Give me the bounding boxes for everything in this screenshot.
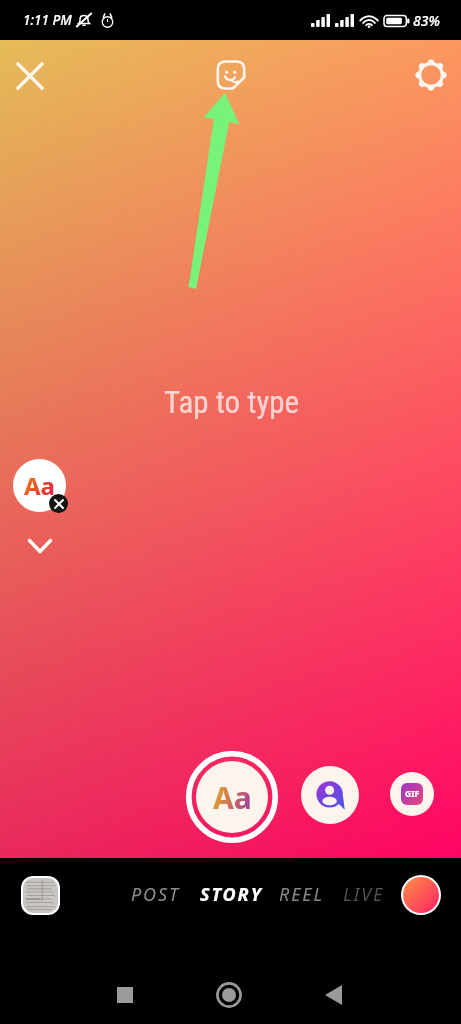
button[interactable]: Close (7, 53, 52, 98)
staticText: STORY (200, 882, 263, 907)
button[interactable]: GIF (390, 772, 434, 816)
button[interactable]: STORY (194, 878, 269, 911)
button[interactable]: REEL (273, 878, 331, 911)
staticText: GIF (405, 788, 420, 800)
button[interactable]: Settings (408, 52, 453, 97)
button[interactable]: Text style (13, 459, 66, 512)
staticText: POST (131, 882, 180, 907)
button[interactable]: Gallery (21, 876, 60, 915)
button[interactable]: Tap to type (164, 384, 300, 420)
button[interactable]: Remove text style (49, 494, 68, 513)
button[interactable]: Mention (301, 766, 359, 824)
button[interactable]: Collapse (20, 526, 60, 566)
button[interactable]: Capture (401, 875, 441, 915)
button[interactable]: LIVE (337, 878, 391, 911)
button[interactable]: Recents (99, 969, 151, 1021)
button[interactable]: POST (125, 878, 186, 911)
button[interactable]: Back (307, 969, 359, 1021)
button[interactable]: Stickers (208, 52, 253, 97)
staticText: 1:11 PM (23, 11, 72, 29)
button[interactable]: Home (203, 969, 255, 1021)
staticText: Aa (213, 777, 252, 818)
button[interactable]: Text (186, 751, 278, 843)
staticText: REEL (279, 882, 325, 907)
staticText: 83% (413, 11, 440, 30)
staticText: LIVE (343, 882, 385, 907)
staticText: Aa (24, 469, 55, 502)
